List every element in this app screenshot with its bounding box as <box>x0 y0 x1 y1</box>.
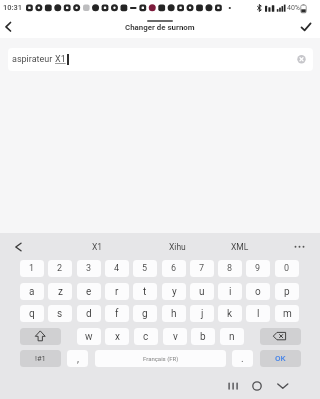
button[interactable]: y <box>162 283 186 300</box>
button[interactable]: 4 <box>105 260 129 277</box>
button[interactable]: a <box>20 283 44 300</box>
button[interactable]: Français (FR) <box>95 350 226 367</box>
staticText: . <box>241 353 244 365</box>
button[interactable]: m <box>275 305 299 322</box>
staticText: 7 <box>199 263 205 274</box>
staticText: e <box>86 286 92 298</box>
staticText: x <box>115 331 120 343</box>
staticText: 3 <box>86 263 92 274</box>
button[interactable]: 1 <box>20 260 44 277</box>
button[interactable] <box>272 376 292 396</box>
button[interactable]: h <box>162 305 186 322</box>
staticText: 8 <box>227 263 233 274</box>
staticText: 4 <box>114 263 120 274</box>
button[interactable]: b <box>191 328 215 345</box>
button[interactable] <box>20 328 61 345</box>
staticText: k <box>227 308 233 320</box>
staticText: o <box>255 286 261 298</box>
button[interactable]: 5 <box>133 260 157 277</box>
button[interactable]: 2 <box>48 260 72 277</box>
staticText: 5 <box>142 263 148 274</box>
button[interactable]: x <box>105 328 129 345</box>
button[interactable]: , <box>67 350 88 367</box>
button[interactable]: j <box>190 305 214 322</box>
staticText: q <box>29 308 35 320</box>
staticText: h <box>171 308 177 320</box>
staticText: b <box>200 331 206 343</box>
button[interactable]: 3 <box>77 260 101 277</box>
staticText: z <box>58 286 63 298</box>
staticText: , <box>77 353 79 365</box>
button[interactable]: o <box>246 283 270 300</box>
staticText: !#1 <box>35 354 46 363</box>
button[interactable]: k <box>218 305 242 322</box>
staticText: XML <box>231 242 249 252</box>
staticText: j <box>201 308 204 320</box>
button[interactable]: e <box>77 283 101 300</box>
button[interactable] <box>260 328 301 345</box>
button[interactable]: Xihu <box>155 233 199 260</box>
button[interactable]: XML <box>218 233 262 260</box>
button[interactable]: f <box>105 305 129 322</box>
button[interactable]: 6 <box>162 260 186 277</box>
button[interactable]: w <box>77 328 101 345</box>
staticText: n <box>229 331 235 343</box>
staticText: r <box>115 286 119 298</box>
staticText: w <box>85 331 93 343</box>
button[interactable]: u <box>190 283 214 300</box>
button[interactable]: q <box>20 305 44 322</box>
button[interactable] <box>222 376 242 396</box>
button[interactable] <box>0 17 24 38</box>
staticText: s <box>57 308 63 320</box>
button[interactable]: . <box>232 350 253 367</box>
button[interactable]: 7 <box>190 260 214 277</box>
button[interactable]: v <box>163 328 187 345</box>
button[interactable] <box>0 233 36 260</box>
button[interactable]: 0 <box>275 260 299 277</box>
staticText: y <box>172 286 177 298</box>
staticText: 40% <box>287 4 300 12</box>
button[interactable] <box>247 376 267 396</box>
staticText: d <box>86 308 92 320</box>
button[interactable]: g <box>133 305 157 322</box>
button[interactable]: l <box>246 305 270 322</box>
button[interactable]: z <box>48 283 72 300</box>
button[interactable]: OK <box>260 350 301 367</box>
button[interactable]: p <box>275 283 299 300</box>
staticText: 10:31 <box>3 3 23 12</box>
staticText: p <box>284 286 290 298</box>
staticText: l <box>257 308 260 320</box>
staticText: 0 <box>284 263 290 274</box>
staticText: OK <box>275 354 286 363</box>
button[interactable]: aspirateur <box>8 48 313 71</box>
staticText: aspirateur <box>12 54 55 65</box>
staticText: i <box>229 286 232 298</box>
staticText: Xihu <box>169 242 186 252</box>
button[interactable]: n <box>220 328 244 345</box>
button[interactable]: d <box>77 305 101 322</box>
button[interactable]: s <box>48 305 72 322</box>
staticText: Changer de surnom <box>125 23 195 32</box>
button[interactable] <box>280 233 320 260</box>
staticText: a <box>29 286 35 298</box>
button[interactable]: !#1 <box>20 350 61 367</box>
button[interactable]: r <box>105 283 129 300</box>
staticText: 6 <box>171 263 177 274</box>
staticText: m <box>283 308 292 320</box>
button[interactable]: X1 <box>75 233 119 260</box>
button[interactable]: t <box>133 283 157 300</box>
staticText: 9 <box>255 263 261 274</box>
staticText: u <box>199 286 205 298</box>
button[interactable]: c <box>134 328 158 345</box>
staticText: t <box>143 286 147 298</box>
button[interactable] <box>296 17 320 38</box>
staticText: X1 <box>55 54 66 65</box>
button[interactable]: i <box>218 283 242 300</box>
staticText: 2 <box>57 263 63 274</box>
staticText: Français (FR) <box>143 355 179 362</box>
staticText: X1 <box>92 242 103 252</box>
button[interactable]: 9 <box>246 260 270 277</box>
button[interactable]: 8 <box>218 260 242 277</box>
staticText: c <box>143 331 149 343</box>
staticText: g <box>142 308 148 320</box>
